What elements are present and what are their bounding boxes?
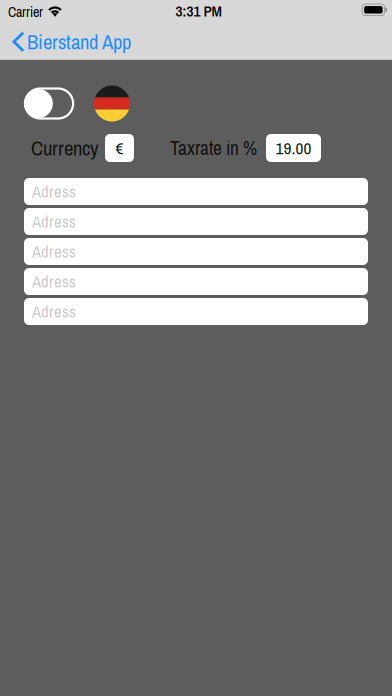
staticText: Currency [31, 134, 98, 162]
staticText: Adress [32, 180, 76, 203]
staticText: € [115, 136, 123, 160]
staticText: 3:31 PM [175, 1, 221, 21]
button[interactable]: Adress [24, 208, 368, 235]
staticText: 19.00 [275, 136, 311, 160]
button[interactable]: Toggle setting [23, 88, 74, 118]
button[interactable]: Adress [24, 298, 368, 325]
button[interactable]: € [105, 134, 134, 162]
button[interactable]: Adress [24, 178, 368, 205]
staticText: Bierstand App [27, 28, 131, 56]
staticText: Taxrate in % [170, 135, 257, 161]
staticText: Adress [32, 210, 76, 233]
staticText: Adress [32, 240, 76, 263]
button[interactable]: 19.00 [266, 134, 321, 162]
button[interactable]: Bierstand App [0, 24, 139, 59]
staticText: Carrier [8, 3, 43, 21]
button[interactable]: Adress [24, 268, 368, 295]
button[interactable]: Country: Germany [94, 85, 130, 121]
staticText: Adress [32, 270, 76, 293]
staticText: Adress [32, 300, 76, 323]
button[interactable]: Adress [24, 238, 368, 265]
